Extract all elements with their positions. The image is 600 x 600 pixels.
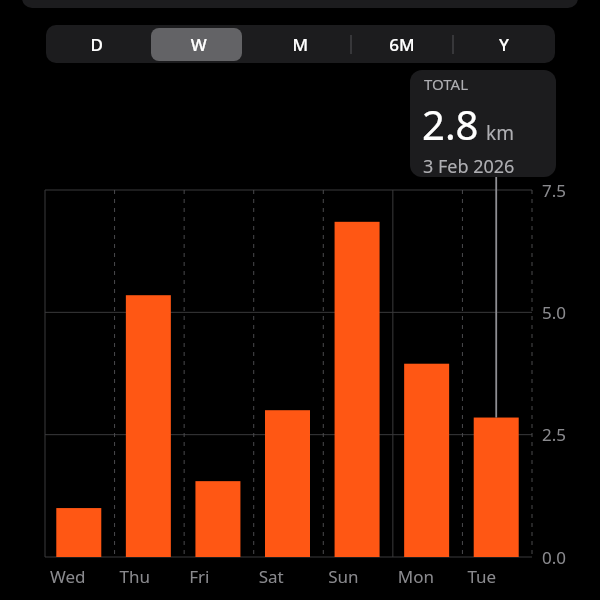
button[interactable]: D — [46, 25, 147, 63]
button[interactable]: M — [249, 25, 350, 63]
button[interactable]: Y — [453, 25, 554, 63]
button[interactable]: 6M — [351, 25, 452, 63]
button[interactable]: W — [147, 25, 248, 63]
button[interactable]: Total 2.8 km, 3 Feb 2026 — [410, 70, 556, 177]
